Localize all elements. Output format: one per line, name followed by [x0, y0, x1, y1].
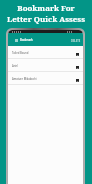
- staticText: Ariel: [12, 64, 18, 68]
- button[interactable]: Menu: [14, 38, 18, 42]
- staticText: DELETE: [71, 39, 81, 43]
- button[interactable]: Ariel: [8, 59, 83, 72]
- staticText: Tailed Bound: [12, 51, 29, 55]
- button[interactable]: Bookmark: [75, 64, 79, 70]
- staticText: Amature Mikabochi: [12, 77, 37, 81]
- button[interactable]: Bookmark: [75, 51, 79, 57]
- staticText: Bookmark For: [17, 3, 75, 14]
- button[interactable]: DELETE: [70, 36, 81, 44]
- staticText: Bookmark: [20, 38, 33, 42]
- button[interactable]: Tailed Bound: [8, 46, 83, 59]
- button[interactable]: Amature Mikabochi: [8, 72, 83, 85]
- button[interactable]: Bookmark: [75, 77, 79, 83]
- staticText: Letter Quick Assess: [7, 14, 85, 25]
